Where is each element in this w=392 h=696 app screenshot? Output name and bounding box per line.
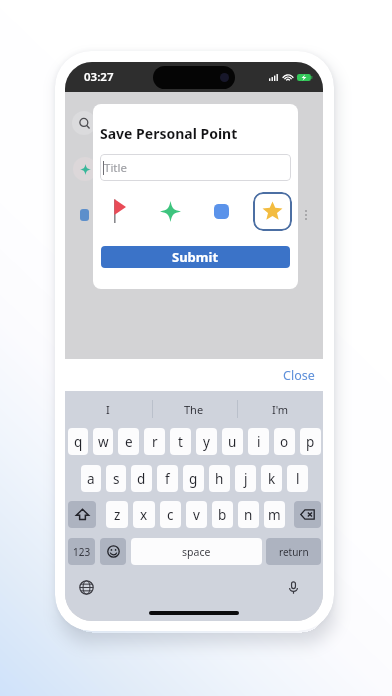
staticText: c [167, 506, 174, 524]
staticText: g [189, 470, 198, 488]
button[interactable]: I [65, 391, 151, 427]
button[interactable]: m [264, 501, 285, 528]
staticText: 03:27 [84, 69, 114, 85]
staticText: s [113, 470, 120, 488]
staticText: Title [104, 160, 127, 176]
button[interactable]: Sparkle marker [145, 190, 196, 232]
staticText: t [178, 433, 183, 451]
button[interactable]: j [235, 465, 256, 492]
button[interactable]: Star marker, selected [247, 190, 298, 232]
button[interactable]: h [209, 465, 230, 492]
button[interactable]: c [160, 501, 181, 528]
staticText: w [98, 433, 109, 451]
button[interactable]: Backspace [294, 501, 321, 528]
staticText: 123 [73, 545, 91, 559]
staticText: n [244, 506, 253, 524]
staticText: b [218, 506, 227, 524]
staticText: Submit [172, 248, 219, 266]
staticText: return [279, 545, 309, 559]
button[interactable]: 123 [68, 538, 95, 565]
button[interactable]: i [248, 428, 269, 455]
button[interactable]: t [170, 428, 191, 455]
staticText: l [296, 470, 300, 488]
staticText: j [244, 470, 248, 488]
button[interactable]: Submit [101, 246, 290, 268]
staticText: x [140, 506, 148, 524]
button[interactable]: l [287, 465, 308, 492]
staticText: I'm [272, 402, 289, 417]
button[interactable]: Square marker [196, 190, 247, 232]
button[interactable]: The [151, 391, 237, 427]
button[interactable]: I'm [237, 391, 323, 427]
staticText: u [228, 433, 237, 451]
button[interactable]: Flag marker [93, 190, 145, 232]
staticText: space [182, 545, 211, 559]
button[interactable]: Shift [68, 501, 96, 528]
button[interactable]: More options [305, 210, 307, 220]
button[interactable]: q [68, 428, 88, 455]
button[interactable]: space [131, 538, 262, 565]
button[interactable]: Change keyboard language [75, 576, 97, 598]
staticText: k [268, 470, 276, 488]
button[interactable]: Close [275, 363, 323, 388]
button[interactable]: k [261, 465, 282, 492]
button[interactable]: Search [72, 111, 96, 135]
button[interactable]: g [183, 465, 204, 492]
staticText: z [114, 506, 121, 524]
staticText: f [165, 470, 170, 488]
button[interactable]: o [274, 428, 295, 455]
button[interactable]: Emoji [100, 538, 126, 565]
staticText: q [74, 433, 83, 451]
button[interactable]: Title [100, 154, 291, 181]
staticText: v [193, 506, 200, 524]
staticText: o [280, 433, 289, 451]
staticText: a [87, 470, 95, 488]
button[interactable]: w [93, 428, 113, 455]
button[interactable]: u [222, 428, 243, 455]
button[interactable]: y [196, 428, 217, 455]
staticText: y [203, 433, 210, 451]
staticText: p [306, 433, 315, 451]
staticText: i [257, 433, 261, 451]
staticText: d [137, 470, 146, 488]
staticText: I [106, 402, 110, 417]
button[interactable]: z [106, 501, 128, 528]
button[interactable]: v [186, 501, 207, 528]
button[interactable]: r [144, 428, 165, 455]
button[interactable]: f [157, 465, 178, 492]
button[interactable]: Marker [73, 157, 97, 181]
staticText: The [184, 402, 204, 417]
button[interactable]: return [266, 538, 321, 565]
staticText: m [268, 506, 281, 524]
staticText: Save Personal Point [100, 124, 238, 143]
button[interactable]: n [238, 501, 259, 528]
button[interactable]: a [81, 465, 101, 492]
button[interactable]: Dictation [282, 576, 304, 598]
staticText: h [215, 470, 224, 488]
staticText: e [125, 433, 133, 451]
button[interactable]: d [131, 465, 152, 492]
button[interactable]: e [118, 428, 139, 455]
button[interactable]: x [133, 501, 155, 528]
button[interactable]: p [300, 428, 321, 455]
button[interactable]: s [106, 465, 126, 492]
button[interactable]: b [212, 501, 233, 528]
staticText: r [152, 433, 158, 451]
